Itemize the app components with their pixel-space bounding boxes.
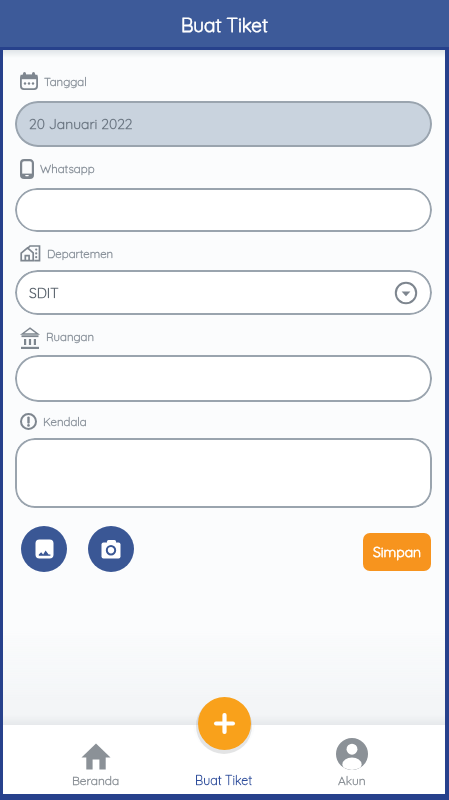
button[interactable] [15,438,432,508]
button[interactable] [198,697,251,750]
staticText: SDIT [29,284,59,302]
staticText: Beranda [72,773,120,788]
staticText: Ruangan [46,329,94,343]
button[interactable] [15,355,432,402]
staticText: Whatsapp [40,161,95,175]
button[interactable]: Simpan [363,533,431,571]
staticText: Kendala [43,414,87,428]
button[interactable] [15,188,432,232]
button[interactable]: 20 Januari 2022 [15,101,432,147]
button[interactable] [88,526,134,572]
button[interactable] [21,526,67,572]
staticText: Akun [338,773,366,788]
button[interactable]: SDIT [15,270,432,315]
staticText: 20 Januari 2022 [29,115,133,133]
button[interactable]: Beranda [50,743,142,788]
staticText: Tanggal [44,74,87,88]
button[interactable]: Buat Tiket [195,772,253,788]
button[interactable]: Akun [322,738,382,788]
staticText: Departemen [47,246,114,260]
staticText: Buat Tiket [181,13,268,37]
staticText: Simpan [373,543,422,561]
staticText: Buat Tiket [195,772,253,788]
